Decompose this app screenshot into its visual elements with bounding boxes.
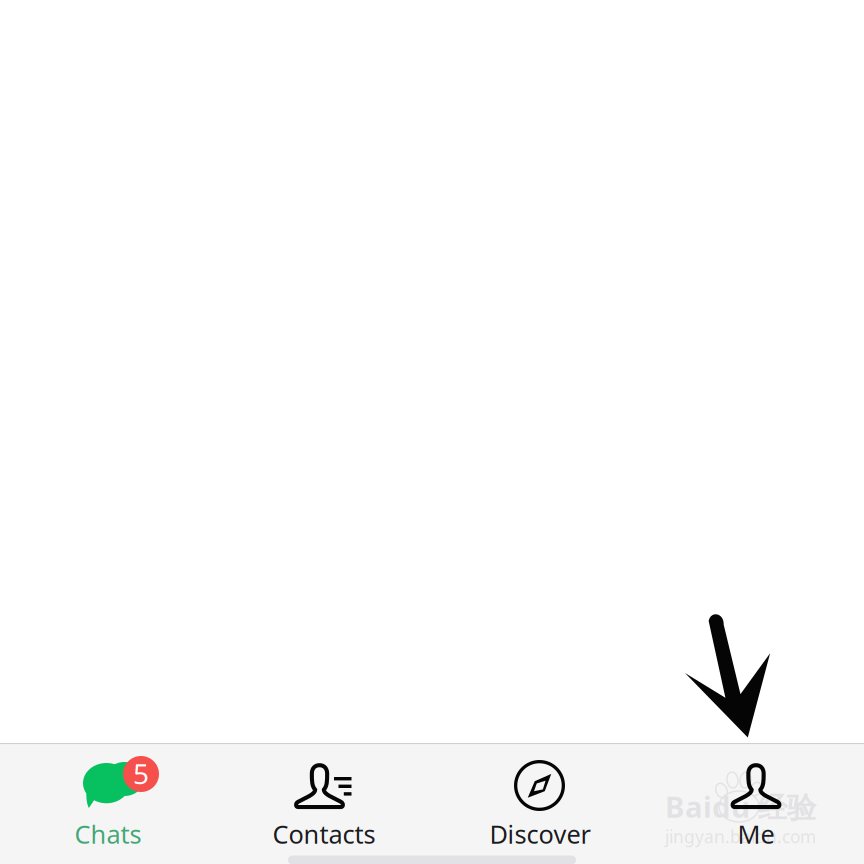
staticText: Discover [489,817,590,851]
button[interactable]: 5 [0,744,216,864]
staticText: jingyan.baidu.com [665,825,816,848]
button[interactable]: Discover [432,744,648,864]
staticText: 5 [133,755,149,792]
staticText: Me [737,817,774,851]
staticText: Baidu 经验 [665,787,816,826]
button[interactable]: Contacts [216,744,432,864]
button[interactable]: Me [648,744,864,864]
staticText: Contacts [272,817,375,851]
staticText: Chats [74,817,141,851]
